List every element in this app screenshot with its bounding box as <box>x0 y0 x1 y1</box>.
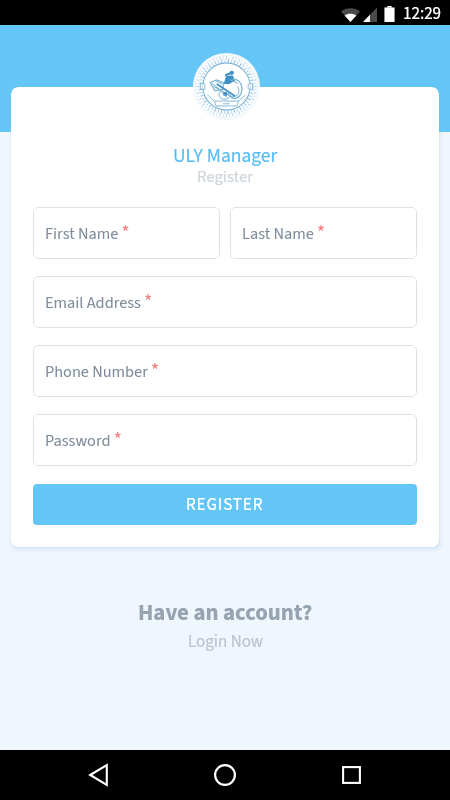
staticText: Phone Number * <box>45 358 160 385</box>
staticText: Login Now <box>188 630 264 654</box>
button[interactable]: REGISTER <box>33 484 417 525</box>
staticText: REGISTER <box>186 493 264 517</box>
button[interactable]: Home <box>200 750 249 799</box>
button[interactable]: Recent apps <box>327 750 376 799</box>
button[interactable]: Email Address * <box>33 276 417 328</box>
button[interactable]: First Name * <box>33 207 220 259</box>
staticText: Last Name * <box>242 220 325 247</box>
staticText: Password * <box>45 427 122 454</box>
button[interactable]: Back <box>74 750 123 799</box>
staticText: Email Address * <box>45 289 153 316</box>
staticText: First Name * <box>45 220 130 247</box>
button[interactable]: Last Name * <box>230 207 417 259</box>
staticText: ULY Manager <box>173 142 278 170</box>
staticText: Register <box>197 165 254 189</box>
button[interactable]: Phone Number * <box>33 345 417 397</box>
button[interactable]: Login Now <box>188 630 264 654</box>
staticText: Have an account? <box>138 597 313 629</box>
staticText: 12:29 <box>403 2 442 26</box>
button[interactable]: Password * <box>33 414 417 466</box>
